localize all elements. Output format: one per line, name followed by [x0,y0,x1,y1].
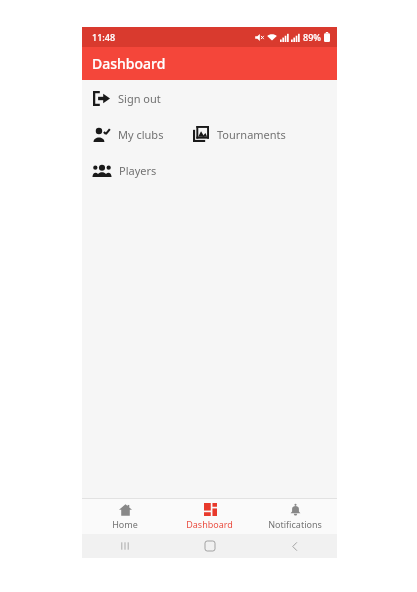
staticText: Notifications [268,518,322,530]
button[interactable]: Players [82,158,163,182]
button[interactable]: Back [252,534,337,558]
staticText: Dashboard [92,54,166,73]
staticText: My clubs [118,127,164,142]
button[interactable]: Dashboard [167,499,252,534]
staticText: Sign out [118,91,161,106]
button[interactable]: Home [82,499,167,534]
button[interactable]: Recent apps [82,534,167,558]
staticText: 11:48 [92,31,116,43]
button[interactable]: Sign out [82,86,167,110]
button[interactable]: My clubs [82,122,170,146]
button[interactable]: Home [167,534,252,558]
staticText: Tournaments [217,127,286,142]
staticText: 89% [303,31,321,43]
staticText: Players [119,163,157,178]
button[interactable]: Tournaments [182,122,292,146]
staticText: Home [112,518,138,530]
button[interactable]: Notifications [252,499,337,534]
staticText: Dashboard [186,518,233,530]
